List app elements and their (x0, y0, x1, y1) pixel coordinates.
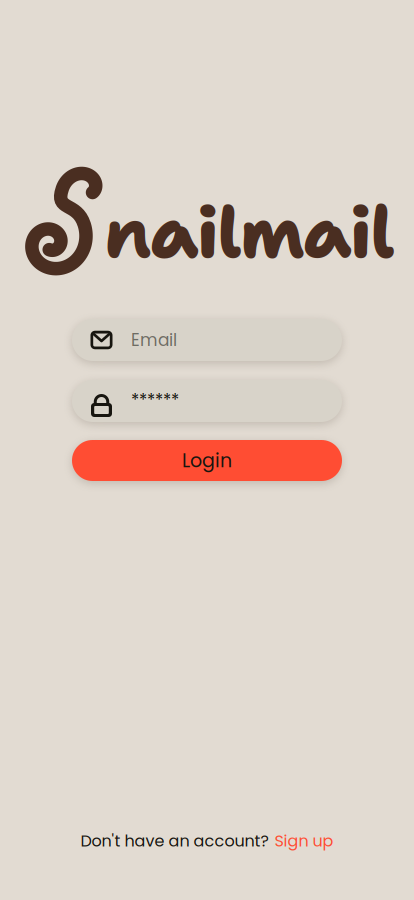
button[interactable]: Email (72, 319, 342, 361)
staticText: ****** (131, 388, 179, 412)
button[interactable]: ****** (72, 380, 342, 422)
staticText: nailmail (104, 186, 395, 280)
button[interactable]: Sign up (274, 830, 333, 852)
staticText: Sign up (274, 830, 333, 852)
staticText: Login (182, 447, 232, 474)
staticText: Email (131, 328, 177, 352)
button[interactable]: Login (72, 440, 342, 481)
staticText: Don't have an account? (80, 830, 268, 852)
